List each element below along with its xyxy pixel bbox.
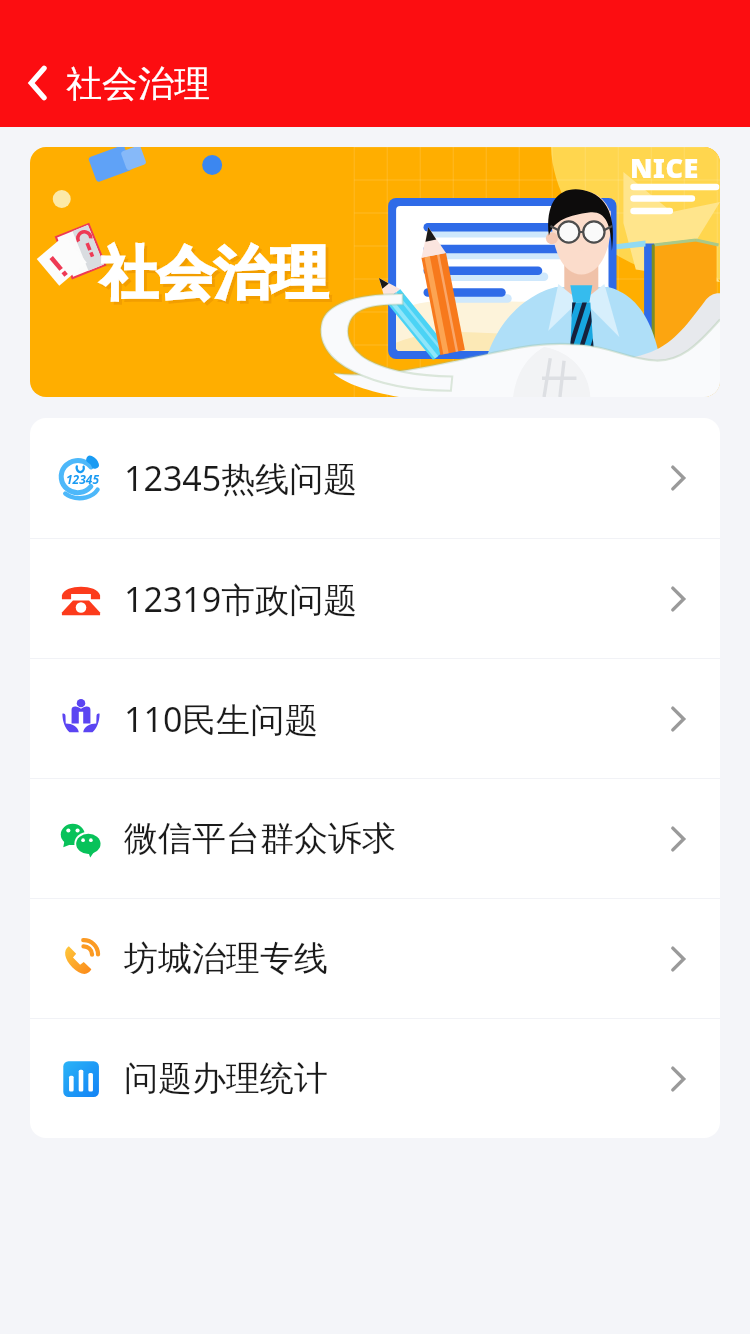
button[interactable]: Back <box>16 61 60 105</box>
staticText: 坊城治理专线 <box>124 937 328 980</box>
staticText: 12345 <box>66 471 100 487</box>
staticText: 社会治理 <box>66 61 210 106</box>
staticText: NICE <box>630 149 699 186</box>
button[interactable]: 110民生问题 <box>30 659 720 778</box>
staticText: 微信平台群众诉求 <box>124 817 396 860</box>
button[interactable]: 坊城治理专线 <box>30 899 720 1018</box>
staticText: 社会治理 <box>103 241 331 313</box>
button[interactable]: 12319市政问题 <box>30 539 720 658</box>
button[interactable]: 问题办理统计 <box>30 1019 720 1138</box>
staticText: 12345热线问题 <box>124 455 358 501</box>
button[interactable]: 社会治理 <box>30 147 720 397</box>
staticText: 110民生问题 <box>124 696 319 742</box>
staticText: 社会治理 <box>100 238 328 310</box>
staticText: 12319市政问题 <box>124 576 358 622</box>
staticText: 问题办理统计 <box>124 1057 328 1100</box>
button[interactable]: 12345 <box>30 418 720 538</box>
button[interactable]: 微信平台群众诉求 <box>30 779 720 898</box>
